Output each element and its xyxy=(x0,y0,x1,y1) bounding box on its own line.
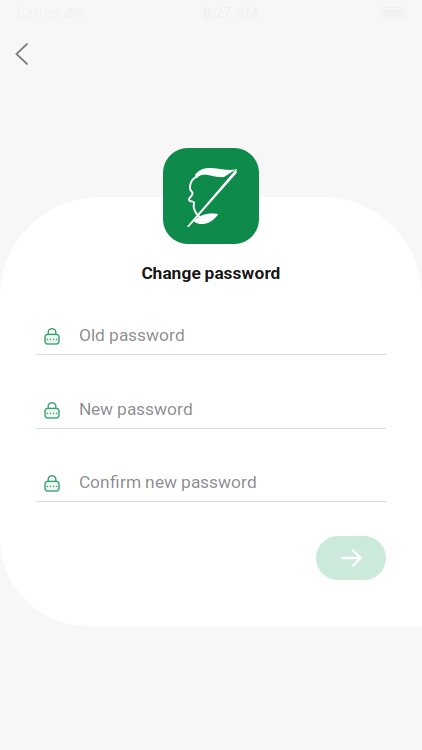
staticText: Old password xyxy=(79,325,185,345)
staticText: New password xyxy=(79,399,193,419)
staticText: Confirm new password xyxy=(79,472,257,492)
button[interactable]: Back xyxy=(0,32,44,76)
staticText: Change password xyxy=(141,263,280,283)
button[interactable]: Continue xyxy=(316,536,386,580)
